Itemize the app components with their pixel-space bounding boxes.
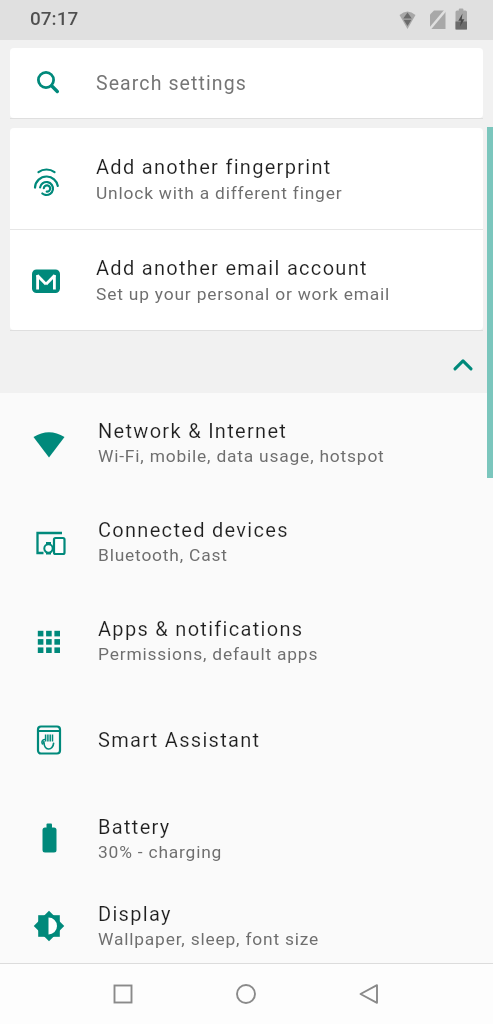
staticText: 30% - charging [98,842,223,862]
staticText: Unlock with a different finger [96,183,343,203]
button[interactable] [99,970,147,1018]
button[interactable]: Network & Internet [0,393,493,492]
button[interactable]: Add another fingerprint [10,128,483,229]
staticText: Battery [98,815,171,838]
button[interactable]: Connected devices [0,492,493,591]
staticText: Display [98,902,172,925]
staticText: Permissions, default apps [98,644,319,664]
staticText: Set up your personal or work email [96,284,391,304]
button[interactable] [222,970,270,1018]
button[interactable]: Search settings [10,48,483,118]
staticText: Wallpaper, sleep, font size [98,929,320,949]
staticText: 07:17 [30,7,79,29]
button[interactable] [439,341,487,389]
staticText: Add another fingerprint [96,155,332,178]
staticText: Bluetooth, Cast [98,545,228,565]
button[interactable]: Smart Assistant [0,690,493,789]
button[interactable]: Battery [0,789,493,888]
staticText: Smart Assistant [98,728,261,751]
button[interactable]: Display [0,888,493,963]
staticText: Apps & notifications [98,617,304,640]
button[interactable] [345,970,393,1018]
staticText: Add another email account [96,256,368,279]
staticText: Connected devices [98,518,289,541]
staticText: Wi-Fi, mobile, data usage, hotspot [98,446,385,466]
staticText: Search settings [96,72,247,95]
button[interactable]: Add another email account [10,230,483,330]
staticText: Network & Internet [98,419,288,442]
button[interactable]: Apps & notifications [0,591,493,690]
